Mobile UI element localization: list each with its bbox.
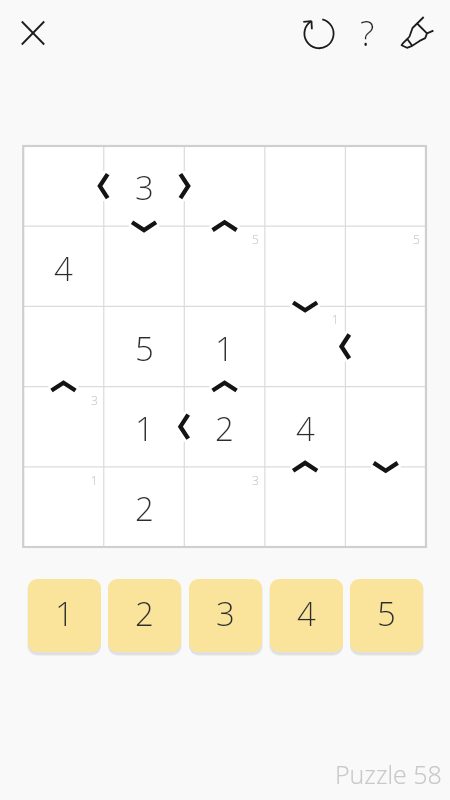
staticText: 2 [135,486,154,531]
staticText: ? [360,10,375,56]
staticText: Puzzle 58 [335,757,442,791]
staticText: 3 [216,591,235,636]
staticText: 4 [54,246,73,291]
staticText: 2 [215,406,234,451]
staticText: 5 [377,591,396,636]
button[interactable] [295,9,343,57]
staticText: 1 [135,406,154,451]
staticText: 2 [135,591,154,636]
staticText: 1 [91,472,98,488]
button[interactable] [9,9,57,57]
staticText: 1 [55,591,74,636]
button[interactable]: 1 [28,579,101,652]
staticText: 3 [91,392,98,408]
button[interactable]: 4 [270,579,343,652]
button[interactable]: 2 [108,579,181,652]
staticText: 3 [135,165,154,210]
staticText: 5 [413,231,420,247]
button[interactable]: 3 [189,579,262,652]
staticText: 3 [252,472,259,488]
staticText: 1 [215,326,234,371]
staticText: 5 [135,326,154,371]
button[interactable] [393,9,441,57]
staticText: 4 [297,591,316,636]
button[interactable]: ? [343,9,391,57]
button[interactable]: 5 [350,579,423,652]
staticText: 1 [332,311,339,327]
staticText: 5 [252,231,259,247]
staticText: 4 [296,406,315,451]
